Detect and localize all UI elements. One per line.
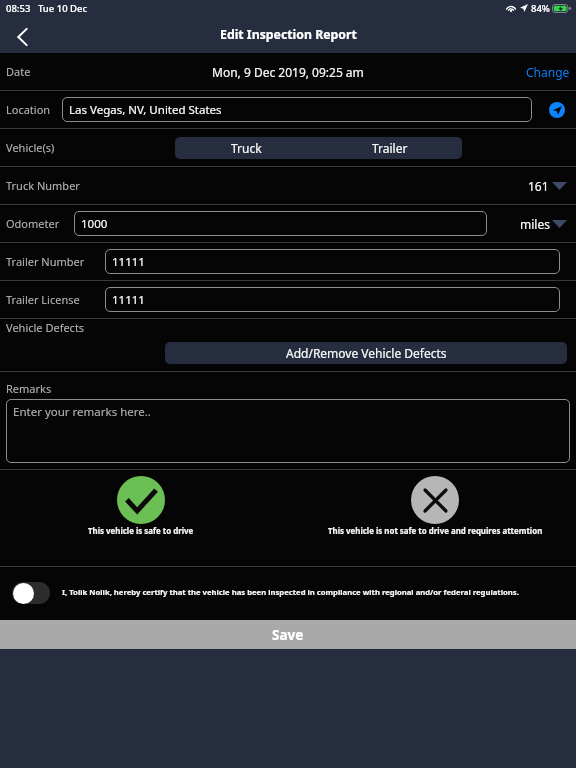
staticText: Trailer License <box>6 292 80 307</box>
button[interactable]: Back <box>0 20 44 53</box>
staticText: Truck <box>231 140 262 156</box>
staticText: miles <box>520 216 550 232</box>
staticText: Trailer <box>372 140 408 156</box>
button[interactable]: Truck Number <box>0 167 576 204</box>
button[interactable]: Enter your remarks here.. <box>6 399 570 463</box>
staticText: Save <box>272 626 304 644</box>
button[interactable]: Las Vegas, NV, United States <box>62 97 532 122</box>
staticText: 1000 <box>81 216 108 232</box>
button[interactable]: Change <box>520 56 576 88</box>
staticText: I, Tolik Nolik, hereby certify that the … <box>62 587 519 597</box>
staticText: This vehicle is safe to drive <box>88 526 194 537</box>
staticText: This vehicle is not safe to drive and re… <box>328 526 543 537</box>
button[interactable]: Truck <box>175 137 318 159</box>
staticText: Trailer Number <box>6 254 85 269</box>
staticText: Location <box>6 102 51 117</box>
staticText: 08:53 <box>6 2 31 15</box>
button[interactable]: Certify toggle <box>12 582 50 604</box>
staticText: Tue 10 Dec <box>38 2 88 15</box>
staticText: Remarks <box>6 381 52 396</box>
button[interactable]: Add/Remove Vehicle Defects <box>165 342 567 364</box>
staticText: Mon, 9 Dec 2019, 09:25 am <box>212 64 364 80</box>
staticText: Add/Remove Vehicle Defects <box>286 345 447 361</box>
staticText: 11111 <box>112 292 145 308</box>
staticText: 161 <box>528 178 549 194</box>
staticText: Vehicle Defects <box>6 320 85 335</box>
staticText: Vehicle(s) <box>6 140 55 155</box>
staticText: 84% <box>531 2 550 15</box>
button[interactable]: This vehicle is not safe to drive and re… <box>295 470 575 566</box>
staticText: Enter your remarks here.. <box>13 404 151 420</box>
button[interactable]: Use current location <box>549 102 565 118</box>
staticText: Change <box>526 64 570 80</box>
button[interactable]: 1000 <box>74 211 487 236</box>
button[interactable]: 11111 <box>105 249 560 274</box>
button[interactable]: This vehicle is safe to drive <box>41 470 241 566</box>
staticText: Edit Inspection Report <box>220 26 357 43</box>
button[interactable]: Save <box>0 620 576 649</box>
button[interactable]: Trailer <box>318 137 462 159</box>
staticText: 11111 <box>112 254 145 270</box>
button[interactable]: 11111 <box>105 287 560 312</box>
staticText: Date <box>6 64 31 79</box>
staticText: Truck Number <box>6 178 80 193</box>
staticText: Odometer <box>6 216 60 231</box>
staticText: Las Vegas, NV, United States <box>69 102 222 118</box>
